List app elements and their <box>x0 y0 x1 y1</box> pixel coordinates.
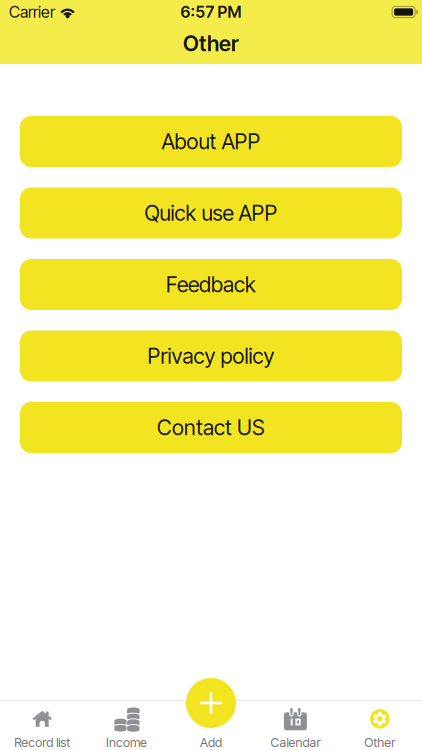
button[interactable]: Feedback <box>20 259 402 310</box>
button[interactable]: Calendar <box>253 700 338 750</box>
staticText: Other <box>183 31 239 56</box>
staticText: Calendar <box>270 735 320 750</box>
staticText: Privacy policy <box>147 343 274 369</box>
staticText: Feedback <box>166 272 256 297</box>
staticText: Record list <box>14 735 70 750</box>
staticText: About APP <box>161 129 260 154</box>
staticText: Add <box>200 735 222 750</box>
staticText: Quick use APP <box>144 200 277 226</box>
button[interactable]: Income <box>84 700 169 750</box>
button[interactable]: About APP <box>20 116 402 167</box>
staticText: Other <box>364 735 395 750</box>
button[interactable]: Privacy policy <box>20 330 402 381</box>
button[interactable]: Contact US <box>20 402 402 453</box>
button[interactable]: Record list <box>0 700 84 750</box>
button[interactable]: Add <box>186 678 236 728</box>
staticText: Carrier <box>9 2 55 22</box>
button[interactable]: Other <box>338 700 422 750</box>
staticText: Income <box>106 735 147 750</box>
staticText: Contact US <box>157 415 265 440</box>
staticText: 6:57 PM <box>180 2 241 22</box>
button[interactable]: Add <box>169 700 253 750</box>
button[interactable]: Quick use APP <box>20 187 402 238</box>
